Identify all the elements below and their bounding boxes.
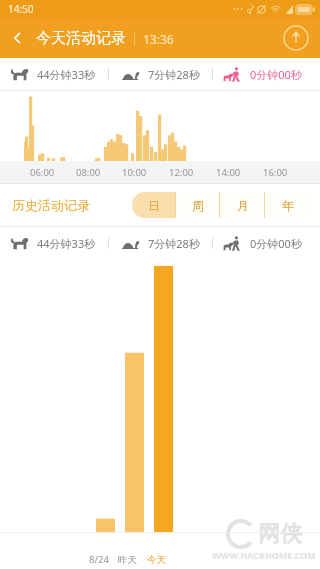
staticText: 16:00 bbox=[263, 166, 288, 179]
staticText: 昨天 bbox=[118, 554, 137, 566]
staticText: 12:00 bbox=[169, 166, 194, 179]
staticText: 10:00 bbox=[122, 166, 147, 179]
staticText: 今天 bbox=[147, 554, 166, 566]
button[interactable]: 年 bbox=[265, 192, 310, 218]
staticText: 8/24 bbox=[89, 553, 109, 566]
button[interactable]: 月 bbox=[220, 192, 265, 218]
button[interactable]: Back bbox=[0, 20, 36, 56]
staticText: 44分钟33秒 bbox=[37, 236, 96, 251]
button[interactable]: 日 bbox=[132, 192, 176, 218]
staticText: 年 bbox=[282, 198, 294, 213]
staticText: 周 bbox=[192, 198, 204, 213]
staticText: 14:00 bbox=[216, 166, 241, 179]
staticText: 0分钟00秒 bbox=[250, 236, 302, 251]
staticText: 06:00 bbox=[30, 166, 55, 179]
staticText: 13:36 bbox=[143, 31, 174, 47]
staticText: 历史活动记录 bbox=[12, 197, 90, 213]
staticText: 0分钟00秒 bbox=[250, 67, 302, 82]
staticText: 7分钟28秒 bbox=[148, 67, 200, 82]
button[interactable]: Upload bbox=[280, 22, 312, 54]
staticText: 14:50 bbox=[8, 2, 34, 16]
staticText: 月 bbox=[237, 198, 249, 213]
staticText: 今天活动记录 bbox=[36, 29, 126, 48]
staticText: WWW.HACKHOME.COM bbox=[212, 549, 316, 561]
staticText: 7分钟28秒 bbox=[148, 236, 200, 251]
staticText: 08:00 bbox=[76, 166, 101, 179]
staticText: 44分钟33秒 bbox=[37, 67, 96, 82]
staticText: 日 bbox=[148, 198, 160, 213]
staticText: 网侠 bbox=[258, 520, 302, 548]
button[interactable]: 周 bbox=[176, 192, 220, 218]
